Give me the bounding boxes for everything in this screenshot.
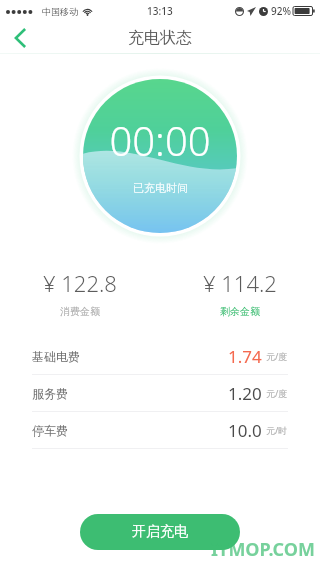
staticText: 基础电费 — [32, 349, 80, 364]
staticText: 10.0 — [228, 419, 262, 442]
staticText: 元/度 — [266, 387, 288, 399]
staticText: 1.20 — [228, 382, 262, 405]
staticText: 00:00 — [109, 113, 211, 167]
staticText: 已充电时间 — [133, 181, 188, 195]
staticText: 服务费 — [32, 386, 68, 401]
button[interactable]: Back — [0, 22, 40, 54]
button[interactable]: 服务费 — [32, 375, 288, 412]
button[interactable]: 停车费 — [32, 412, 288, 449]
staticText: ¥ 122.8 — [43, 268, 117, 298]
staticText: ¥ 114.2 — [203, 268, 277, 298]
staticText: 开启充电 — [132, 523, 188, 541]
button[interactable]: 开启充电 — [80, 514, 240, 550]
staticText: 92% — [271, 4, 291, 18]
staticText: 消费金额 — [60, 305, 100, 318]
button[interactable]: 基础电费 — [32, 338, 288, 375]
staticText: 中国移动 — [42, 6, 78, 17]
staticText: 停车费 — [32, 423, 68, 438]
staticText: ITMOP.COM — [211, 537, 316, 562]
staticText: 13:13 — [147, 4, 173, 18]
staticText: 1.74 — [228, 345, 262, 368]
staticText: 充电状态 — [128, 28, 192, 48]
staticText: 元/时 — [266, 424, 288, 436]
staticText: 剩余金额 — [220, 305, 260, 318]
staticText: 元/度 — [266, 350, 288, 362]
